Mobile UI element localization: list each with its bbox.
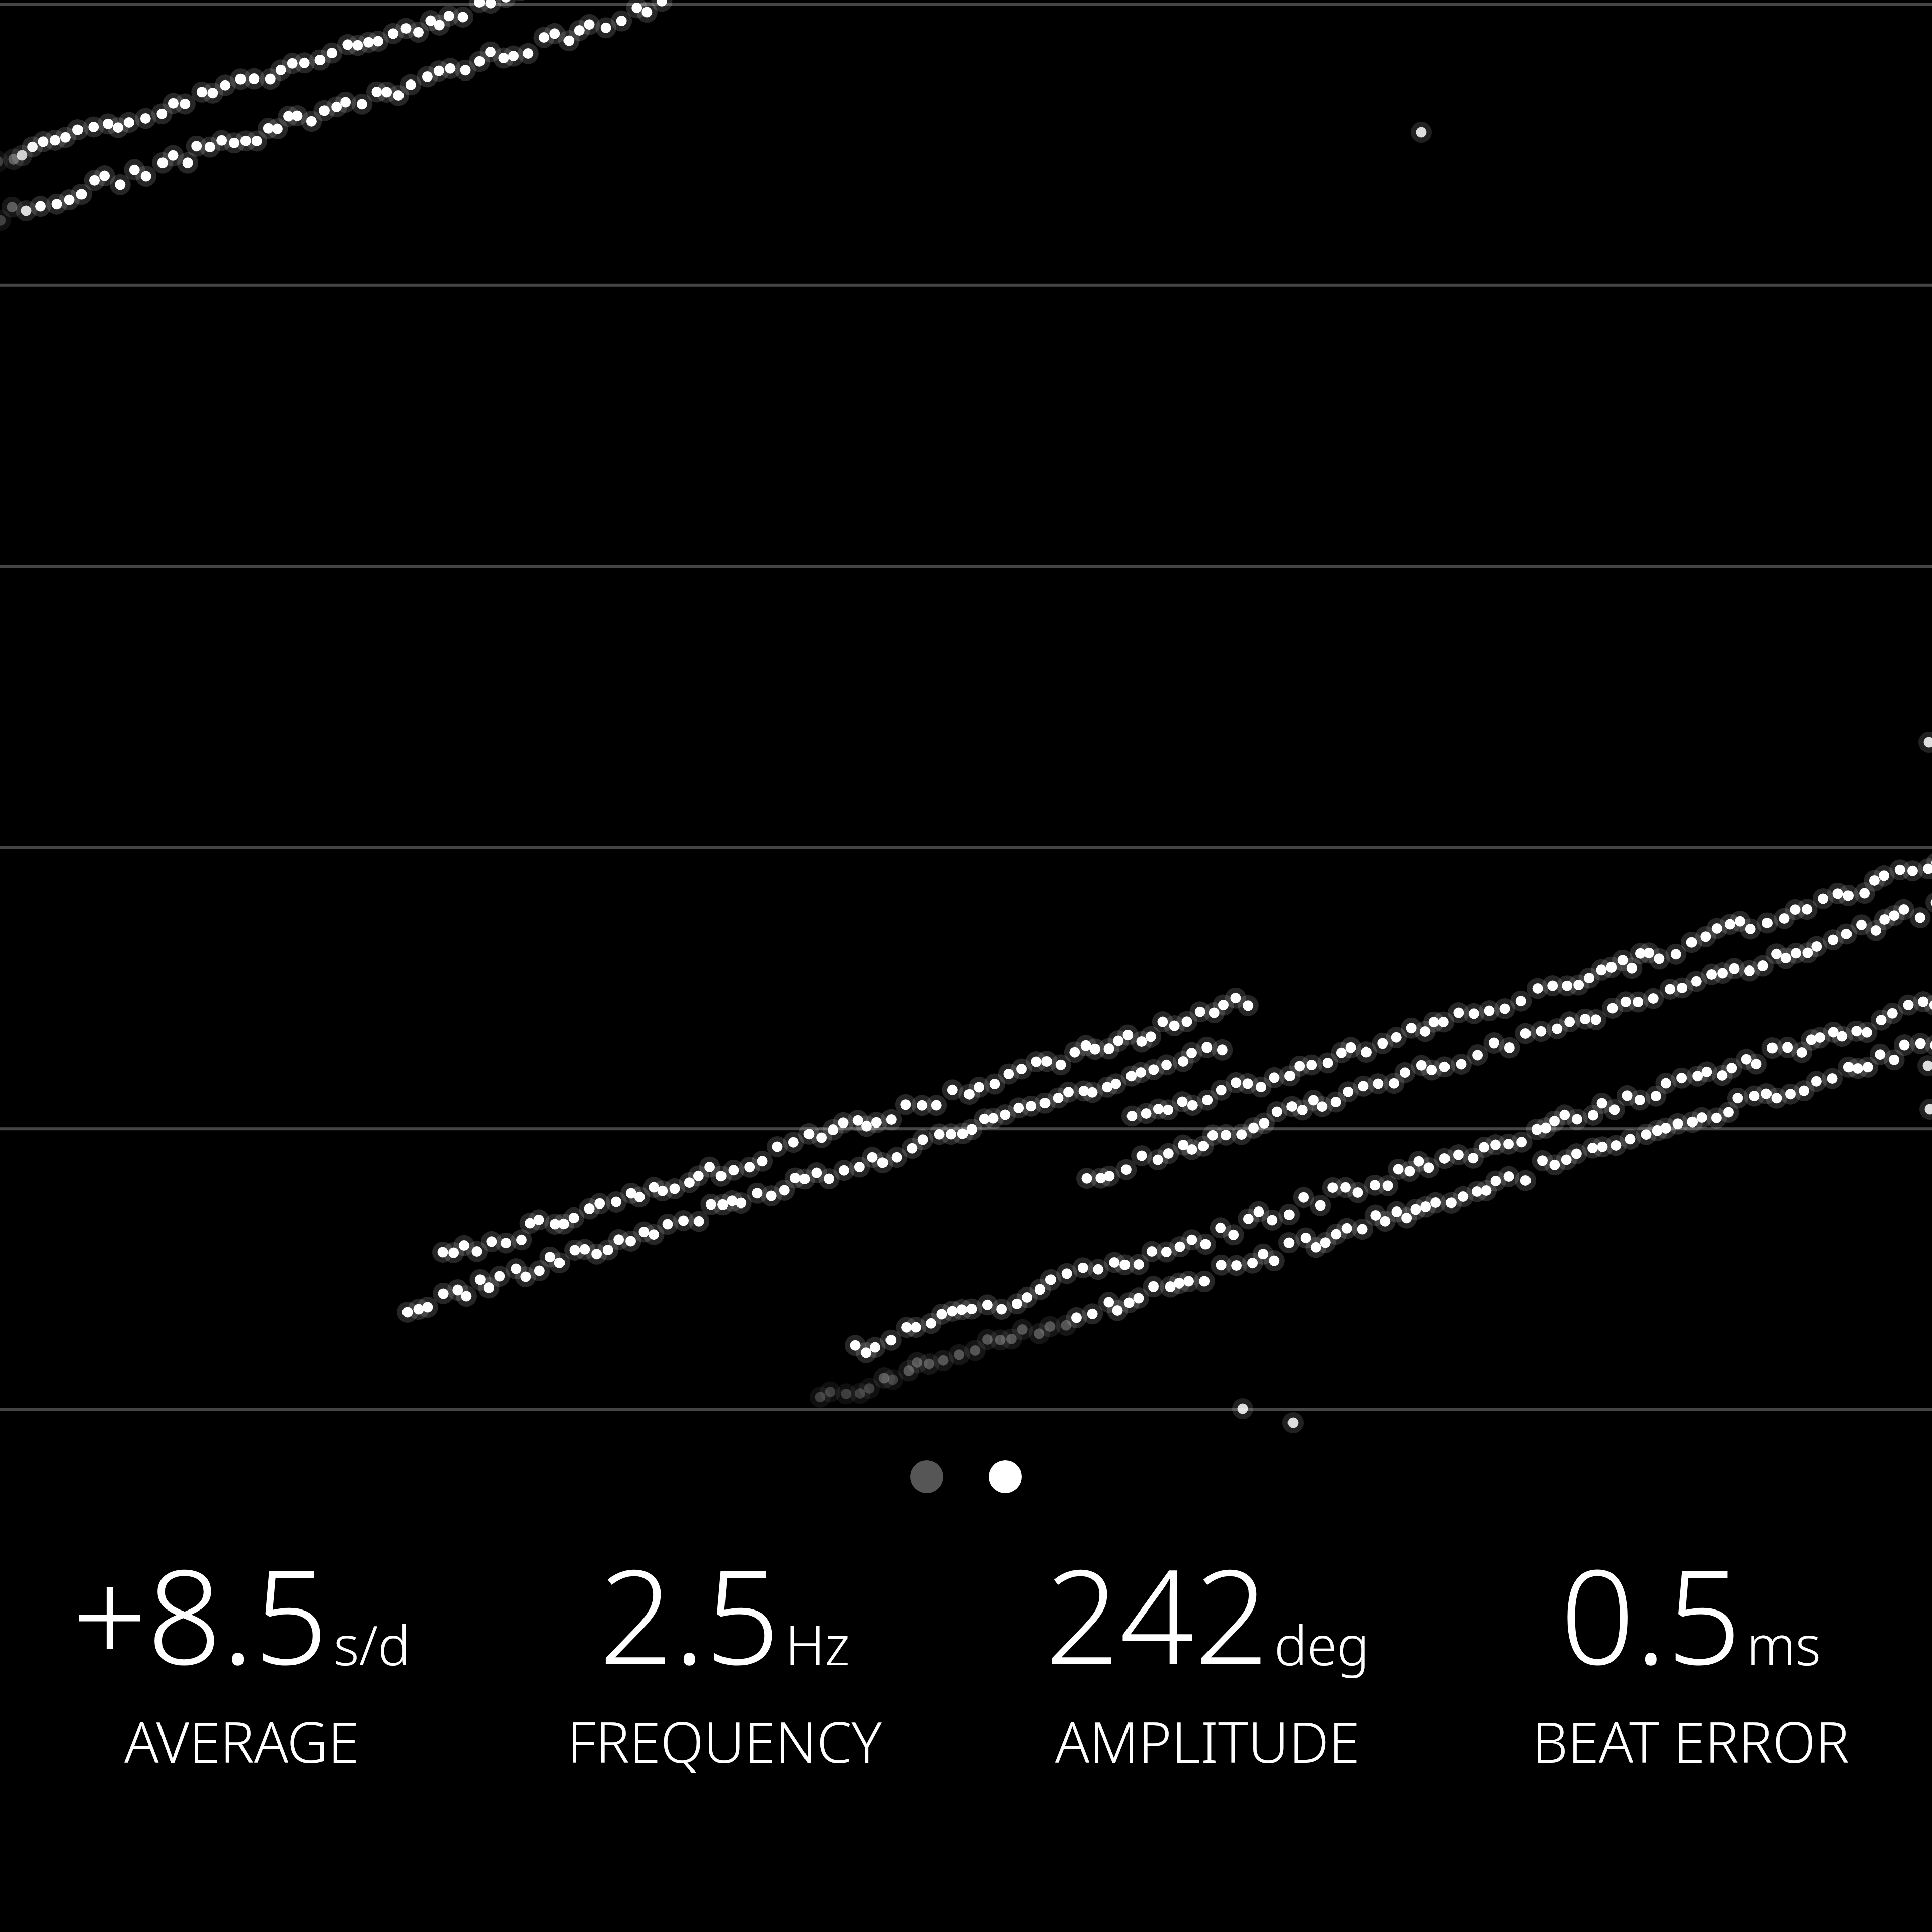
staticText: s/d bbox=[334, 1607, 411, 1681]
staticText: BEAT ERROR bbox=[1532, 1703, 1849, 1780]
staticText: deg bbox=[1274, 1607, 1370, 1681]
button[interactable]: 0.5 bbox=[1449, 1524, 1932, 1806]
staticText: +8.5 bbox=[72, 1524, 329, 1703]
button[interactable]: +8.5 bbox=[0, 1524, 483, 1806]
staticText: AVERAGE bbox=[124, 1703, 359, 1780]
button[interactable]: 2.5 bbox=[483, 1524, 966, 1806]
staticText: Hz bbox=[785, 1607, 850, 1681]
button[interactable]: Page 1 bbox=[910, 1460, 943, 1493]
staticText: ms bbox=[1747, 1607, 1821, 1681]
staticText: 0.5 bbox=[1560, 1524, 1742, 1703]
staticText: 2.5 bbox=[599, 1524, 780, 1703]
button[interactable]: Page 2, selected bbox=[989, 1460, 1022, 1493]
staticText: FREQUENCY bbox=[567, 1703, 882, 1780]
button[interactable]: Beat trace graph bbox=[0, 0, 1932, 1429]
staticText: AMPLITUDE bbox=[1055, 1703, 1360, 1780]
button[interactable]: 242 bbox=[966, 1524, 1449, 1806]
staticText: 242 bbox=[1045, 1524, 1269, 1703]
